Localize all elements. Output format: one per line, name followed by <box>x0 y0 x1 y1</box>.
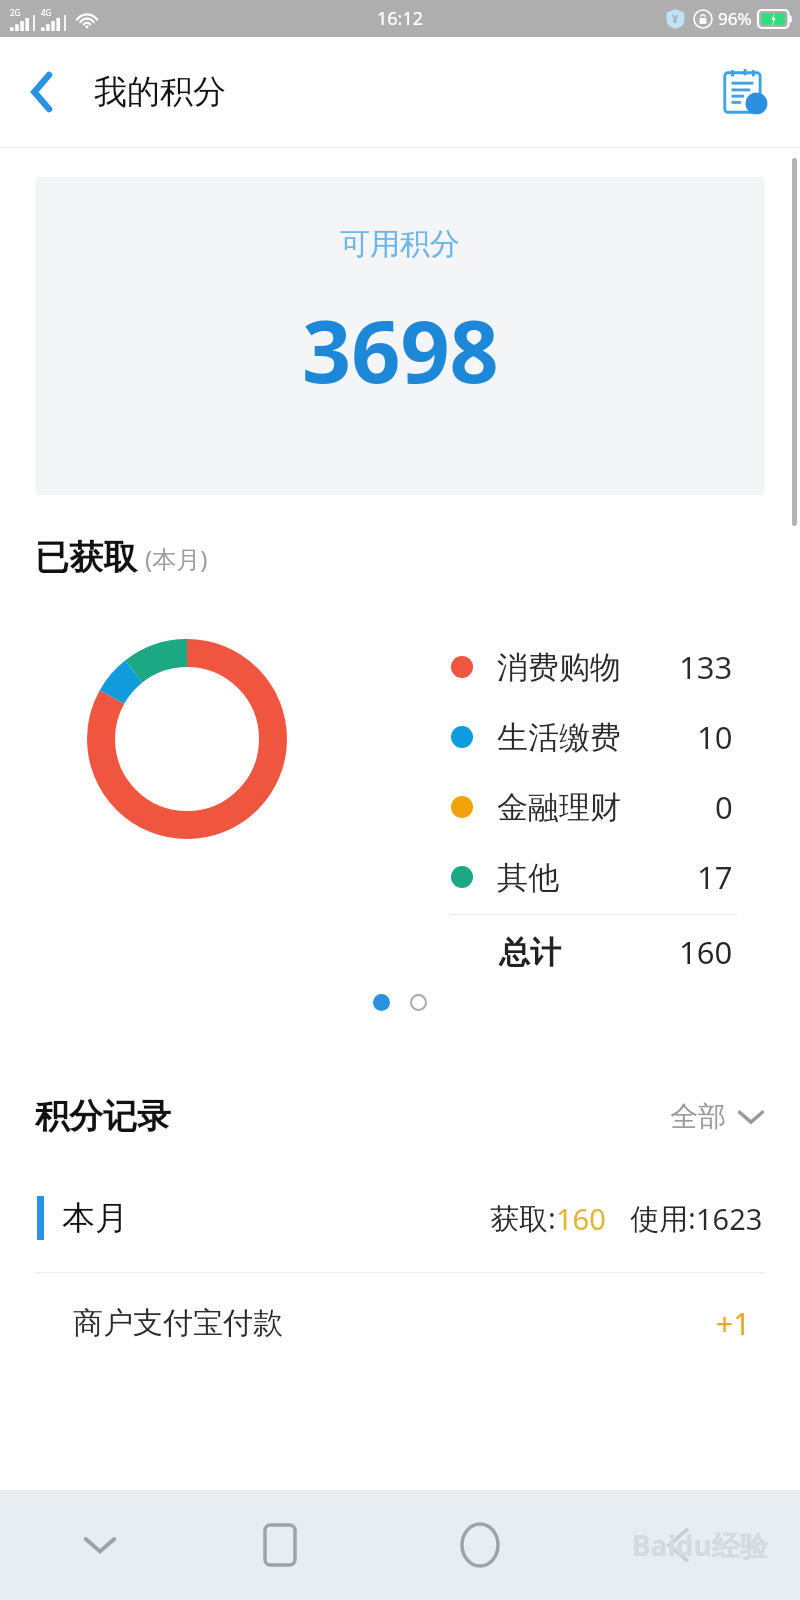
staticText: 1623 <box>696 1199 763 1238</box>
staticText: 总计 <box>499 933 561 972</box>
staticText: 本月 <box>62 1197 128 1239</box>
staticText: (本月) <box>145 542 208 575</box>
staticText: 160 <box>556 1199 606 1238</box>
button[interactable]: Monthly bill <box>710 58 778 126</box>
button[interactable]: Recents <box>180 1490 380 1600</box>
staticText: 可用积分 <box>340 225 460 263</box>
button[interactable]: Hide keyboard <box>20 1490 180 1600</box>
staticText: 其他 <box>497 858 559 897</box>
staticText: 16:12 <box>377 6 424 31</box>
staticText: 金融理财 <box>497 788 621 827</box>
staticText: 10 <box>697 716 733 758</box>
staticText: 我的积分 <box>94 71 226 113</box>
staticText: 生活缴费 <box>497 718 621 757</box>
staticText: +1 <box>716 1303 751 1344</box>
button[interactable]: Home <box>380 1490 580 1600</box>
staticText: 133 <box>679 646 733 688</box>
button[interactable]: 商户支付宝付款 <box>35 1273 765 1373</box>
staticText: Baidu经验 <box>632 1526 768 1564</box>
button[interactable]: 消费购物 <box>35 606 765 1059</box>
button[interactable]: 可用积分 <box>35 177 765 495</box>
button[interactable]: 本月 <box>35 1164 765 1272</box>
staticText: 2G <box>10 7 21 18</box>
staticText: 积分记录 <box>35 1095 171 1138</box>
staticText: 0 <box>715 786 733 828</box>
staticText: 商户支付宝付款 <box>73 1304 283 1342</box>
staticText: 3698 <box>302 291 499 408</box>
button[interactable]: Back <box>580 1490 780 1600</box>
staticText: 160 <box>679 931 733 973</box>
staticText: 17 <box>697 856 733 898</box>
staticText: 使用: <box>630 1198 696 1238</box>
staticText: 获取: <box>490 1198 556 1238</box>
button[interactable]: 全部 <box>664 1091 770 1142</box>
staticText: 全部 <box>670 1099 726 1134</box>
staticText: 消费购物 <box>497 648 621 687</box>
staticText: 96% <box>718 7 752 30</box>
staticText: 已获取 <box>35 536 137 579</box>
button[interactable]: Back <box>22 65 62 119</box>
staticText: 4G <box>41 7 52 18</box>
staticText: ¥ <box>672 11 679 26</box>
